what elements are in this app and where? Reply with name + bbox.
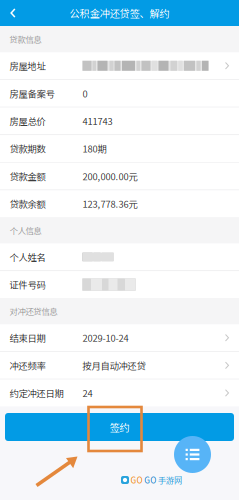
staticText: 证件号码 [9, 278, 45, 291]
staticText: 个人信息 [9, 224, 41, 236]
button[interactable]: 证件号码 [0, 271, 239, 298]
staticText: 200,000.00元 [82, 169, 137, 183]
button[interactable]: 房屋总价 [0, 107, 239, 134]
button[interactable]: 约定冲还日期 [0, 379, 239, 406]
staticText: 180期 [82, 142, 106, 155]
button[interactable]: 个人姓名 [0, 243, 239, 270]
staticText: 24 [82, 386, 92, 400]
staticText: 房屋备案号 [9, 87, 54, 100]
staticText: 贷款金额 [9, 169, 45, 183]
staticText: GO [144, 474, 156, 486]
staticText: 123,778.36元 [82, 197, 137, 210]
button[interactable]: Menu [174, 436, 211, 473]
staticText: 个人姓名 [9, 250, 45, 264]
staticText: 房屋地址 [9, 59, 45, 72]
staticText: 2029-10-24 [82, 331, 128, 344]
staticText: 贷款期数 [9, 142, 45, 155]
staticText: 对冲还贷信息 [9, 305, 57, 317]
staticText: 0 [82, 87, 87, 100]
staticText: 公积金冲还贷签、解约 [69, 6, 169, 20]
staticText: 约定冲还日期 [9, 386, 63, 400]
button[interactable]: 冲还频率 [0, 352, 239, 379]
button[interactable]: Back [0, 0, 26, 26]
button[interactable]: 签约 [5, 413, 234, 441]
button[interactable]: 贷款期数 [0, 135, 239, 162]
staticText: 411743 [82, 114, 112, 128]
staticText: 结束日期 [9, 331, 45, 344]
staticText: 房屋总价 [9, 114, 45, 128]
button[interactable]: 房屋地址 [0, 52, 239, 79]
button[interactable]: 结束日期 [0, 324, 239, 351]
staticText: 按月自动冲还贷 [82, 359, 145, 372]
staticText: 贷款余额 [9, 197, 45, 210]
staticText: GO [131, 474, 143, 486]
button[interactable]: 房屋备案号 [0, 80, 239, 107]
staticText: 贷款信息 [9, 33, 41, 45]
staticText: 手游网 [158, 474, 182, 486]
staticText: 签约 [109, 420, 129, 434]
button[interactable]: 贷款余额 [0, 190, 239, 217]
staticText: 冲还频率 [9, 359, 45, 372]
button[interactable]: 贷款金额 [0, 163, 239, 190]
